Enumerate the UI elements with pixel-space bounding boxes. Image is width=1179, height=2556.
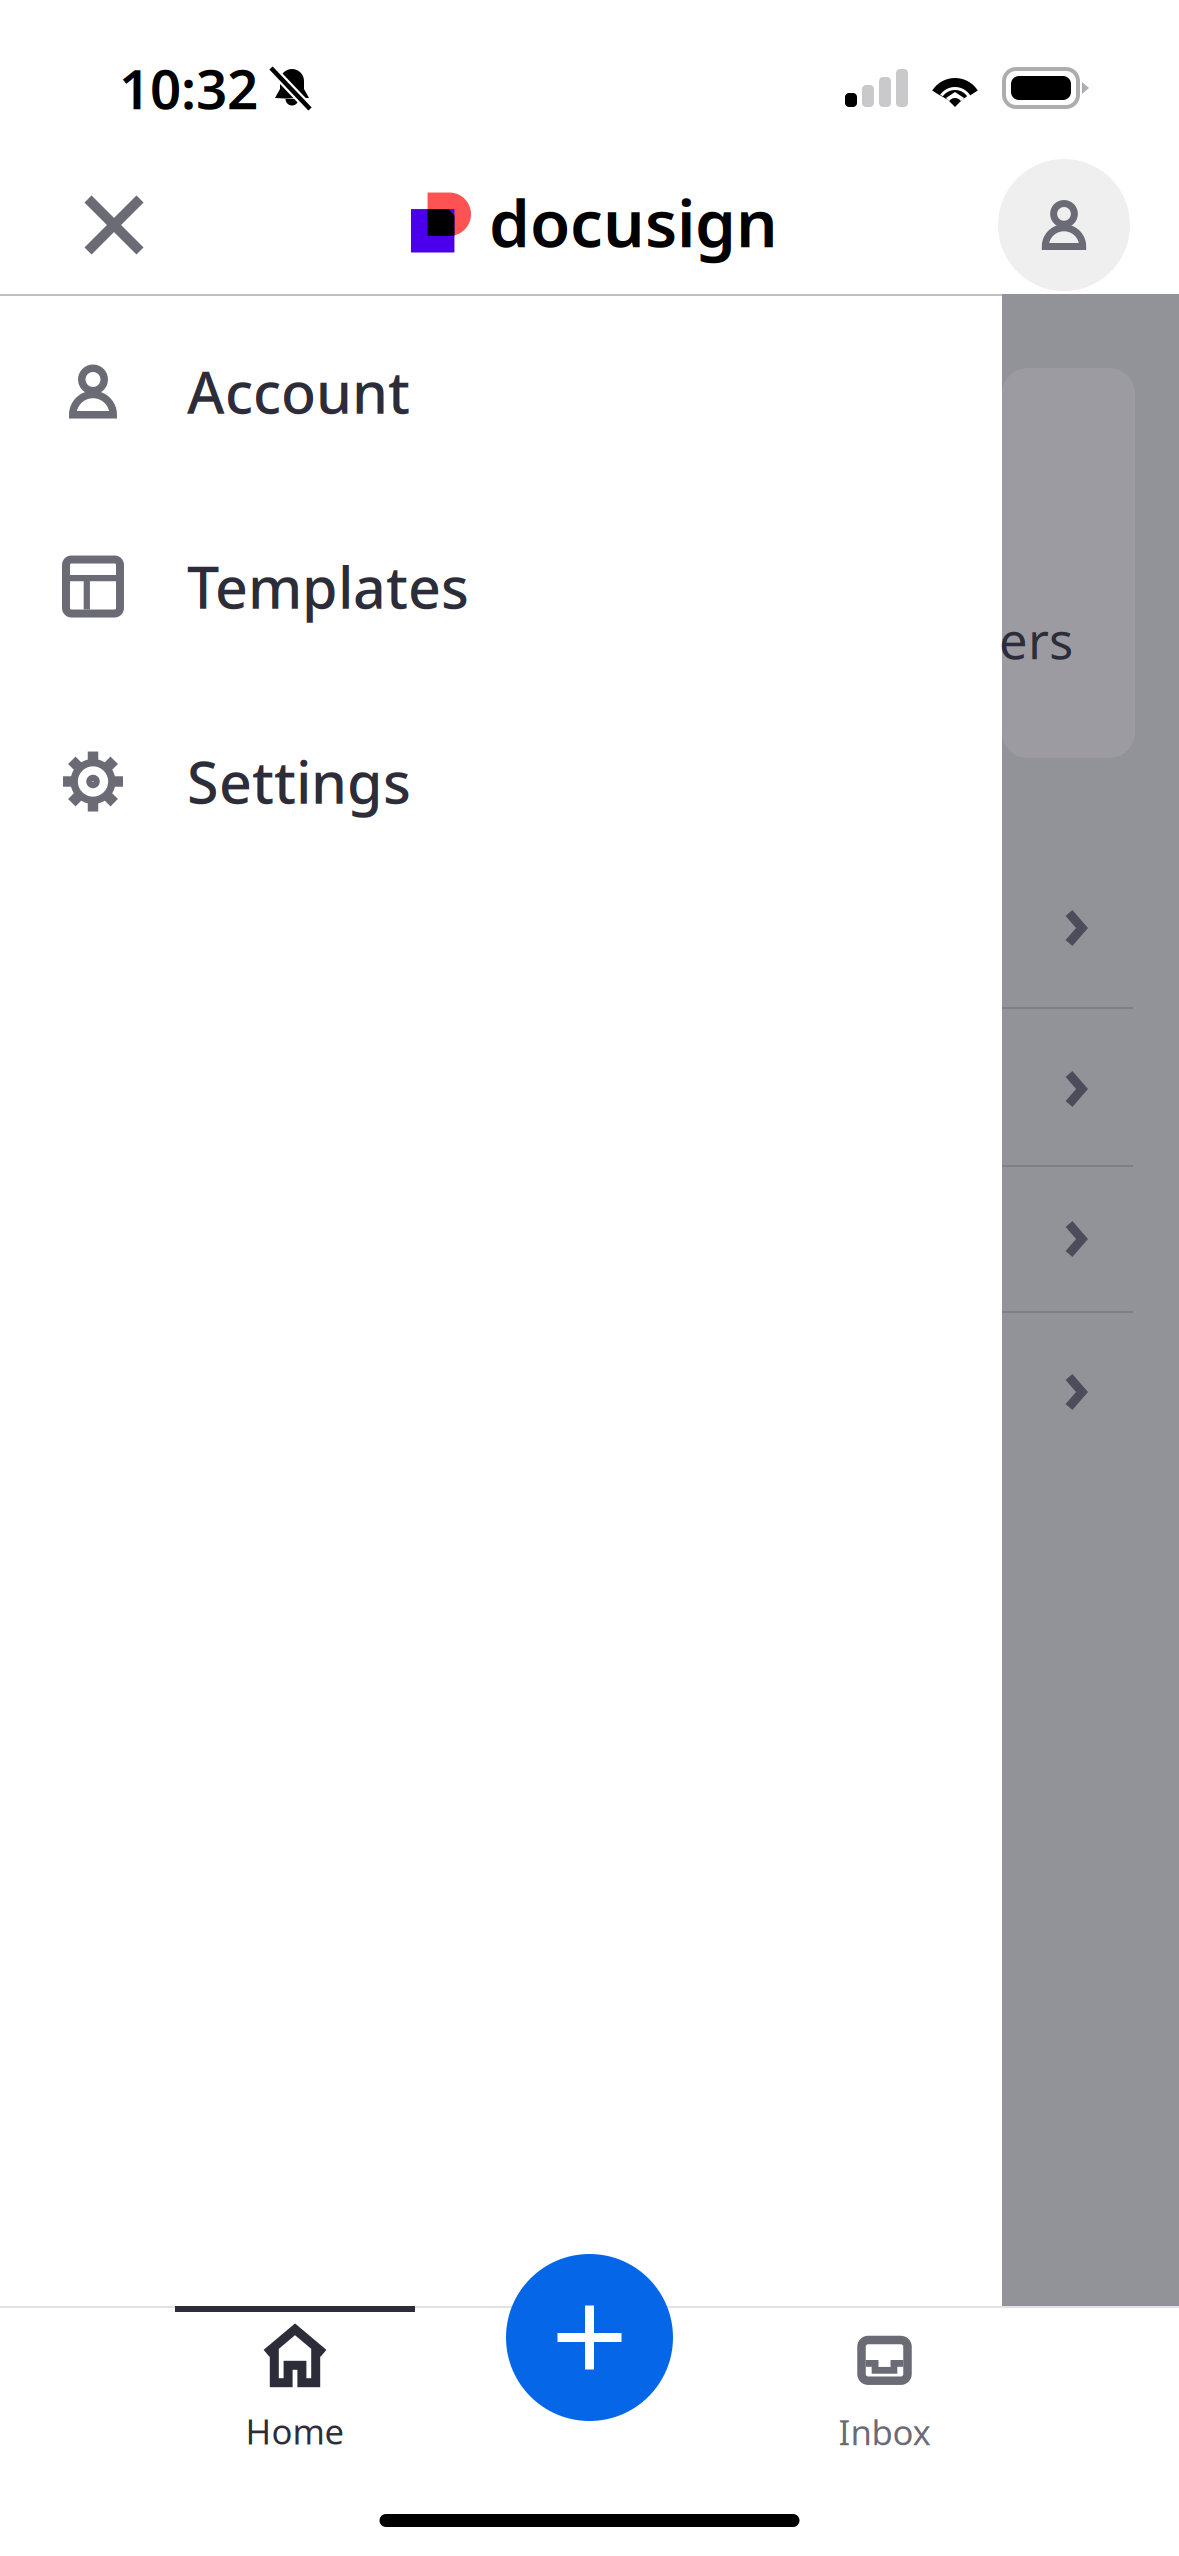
staticText: Inbox (838, 2409, 930, 2455)
staticText: Account (187, 353, 410, 429)
staticText: Settings (187, 743, 411, 819)
button[interactable]: Templates (0, 489, 1002, 684)
button[interactable]: Close menu (0, 150, 188, 294)
button[interactable]: Account (0, 294, 1002, 489)
staticText: Templates (187, 548, 469, 624)
staticText: ers (999, 606, 1073, 673)
button[interactable]: Create new document (506, 2254, 673, 2421)
staticText: docusign (489, 179, 778, 265)
staticText: 10:32 (119, 52, 258, 124)
staticText: Home (245, 2408, 344, 2454)
button[interactable]: Inbox (590, 2306, 1179, 2556)
button[interactable]: Account profile (998, 153, 1179, 291)
button[interactable]: Home (0, 2306, 590, 2556)
button[interactable]: Settings (0, 684, 1002, 879)
